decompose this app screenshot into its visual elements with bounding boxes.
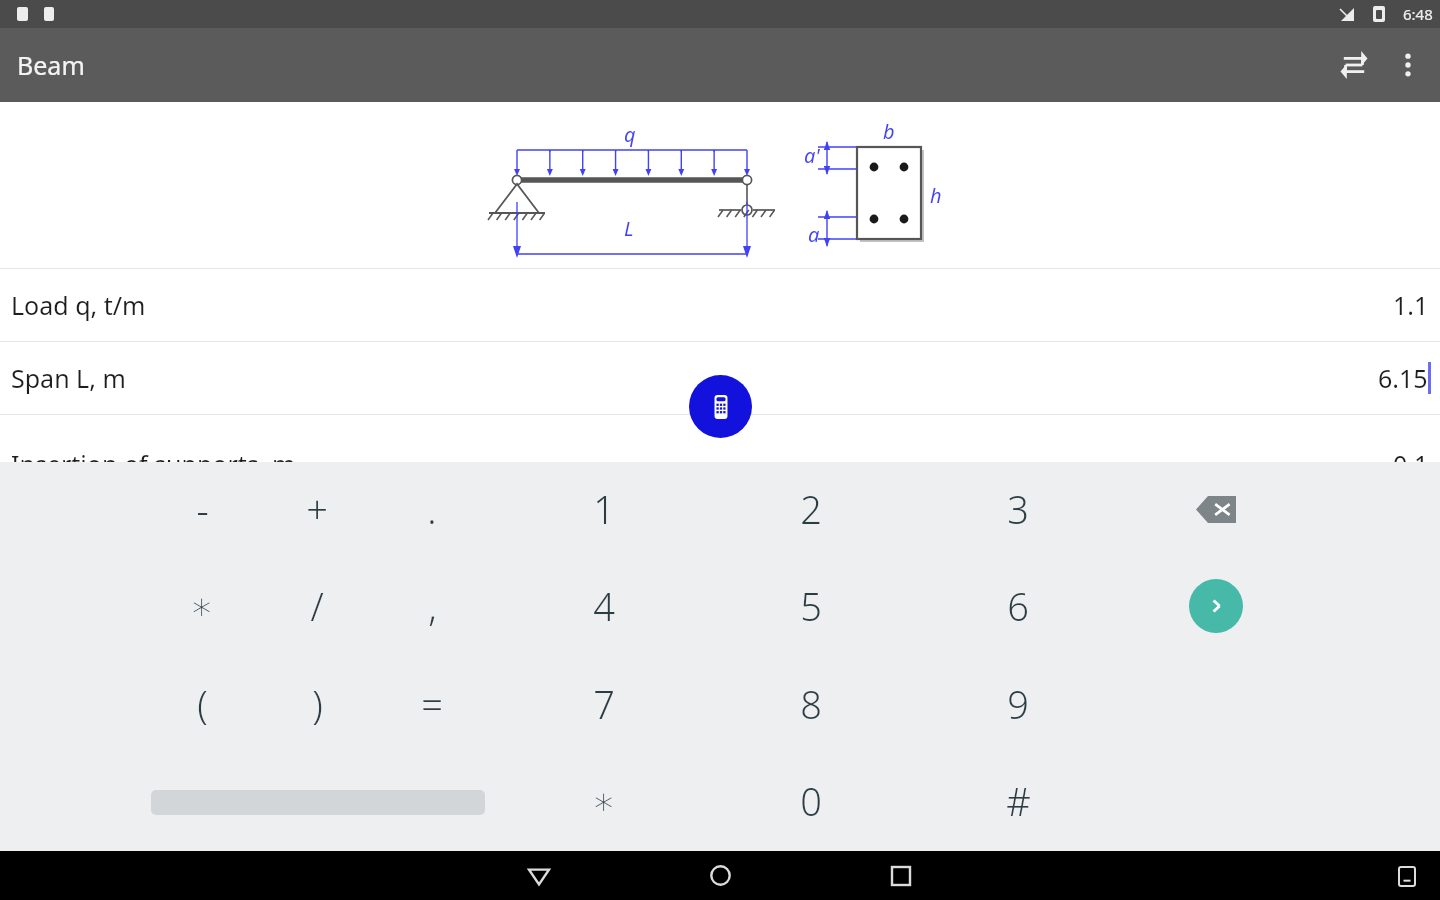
button[interactable]: ( [154, 660, 250, 748]
button[interactable]: 3 [970, 465, 1066, 553]
staticText: a' [804, 142, 820, 169]
button[interactable]: 2 [763, 465, 859, 553]
button[interactable]: 8 [763, 660, 859, 748]
staticText: 2 [800, 483, 822, 535]
button[interactable]: Recent apps [867, 851, 935, 900]
button[interactable]: - [154, 465, 250, 553]
button[interactable]: More options [1382, 39, 1434, 91]
staticText: L [624, 215, 634, 242]
staticText: 4 [593, 580, 615, 632]
button[interactable]: Home [686, 851, 754, 900]
button[interactable]: Insertion of supports, m [0, 415, 1440, 462]
staticText: 5 [800, 580, 822, 632]
staticText: Span L, m [11, 361, 126, 395]
staticText: 9 [1007, 678, 1029, 730]
button[interactable]: Span L, m [0, 342, 1440, 414]
staticText: 1 [593, 483, 615, 535]
button[interactable]: = [384, 660, 480, 748]
staticText: / [310, 580, 324, 632]
staticText: 0 [800, 775, 822, 827]
staticText: . [427, 483, 437, 535]
button[interactable]: Swap layout [1328, 39, 1380, 91]
staticText: - [196, 483, 209, 535]
staticText: 3 [1007, 483, 1029, 535]
button[interactable]: 5 [763, 562, 859, 650]
staticText: b [883, 118, 895, 145]
button[interactable]: 1 [556, 465, 652, 553]
staticText: q [624, 121, 636, 148]
staticText: = [421, 678, 443, 730]
staticText: Load q, t/m [11, 288, 146, 322]
button[interactable]: Calculate [689, 375, 752, 438]
staticText: h [930, 182, 942, 209]
button[interactable]: Back [505, 851, 573, 900]
button[interactable]: 7 [556, 660, 652, 748]
button[interactable]: Next field [1189, 579, 1243, 633]
staticText: + [306, 483, 328, 535]
button[interactable]: 6 [970, 562, 1066, 650]
staticText: 1.1 [1393, 288, 1429, 322]
staticText: 8 [800, 678, 822, 730]
button[interactable]: / [269, 562, 365, 650]
staticText: a [808, 221, 820, 248]
staticText: 6 [1007, 580, 1029, 632]
button[interactable]: Backspace [1176, 469, 1256, 549]
staticText: ( [197, 678, 208, 730]
button[interactable]: + [269, 465, 365, 553]
staticText: Beam [17, 48, 85, 82]
staticText: ) [312, 678, 323, 730]
staticText: ∗ [592, 779, 616, 823]
button[interactable]: ) [269, 660, 365, 748]
staticText: 0.1 [1393, 447, 1429, 481]
staticText: 7 [593, 678, 615, 730]
button[interactable]: Load q, t/m [0, 269, 1440, 341]
button[interactable]: # [970, 757, 1066, 845]
button[interactable]: . [384, 465, 480, 553]
button[interactable]: 4 [556, 562, 652, 650]
staticText: 6:48 [1403, 4, 1433, 24]
staticText: Insertion of supports, m [11, 447, 296, 481]
staticText: , [428, 580, 437, 632]
staticText: 6.15 [1378, 361, 1428, 395]
staticText: # [1006, 775, 1031, 827]
staticText: ∗ [190, 584, 214, 628]
button[interactable]: 9 [970, 660, 1066, 748]
button[interactable]: ∗ [154, 562, 250, 650]
button[interactable]: ∗ [556, 757, 652, 845]
button[interactable]: , [384, 562, 480, 650]
button[interactable]: 0 [763, 757, 859, 845]
button[interactable]: Switch keyboard [1384, 853, 1430, 899]
